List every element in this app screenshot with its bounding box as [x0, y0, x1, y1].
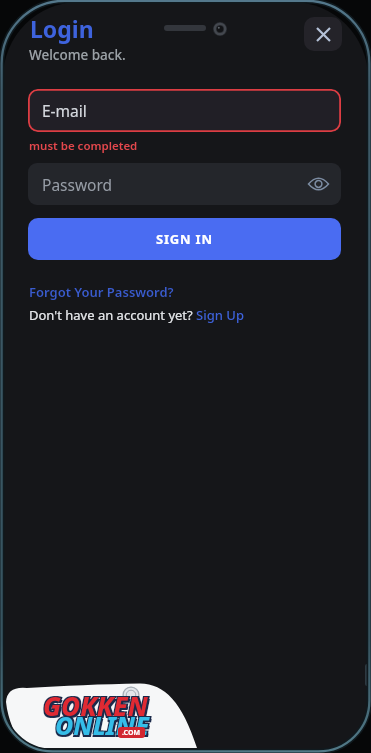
staticText: ONLINE: [54, 707, 148, 741]
button[interactable]: [304, 17, 342, 51]
staticText: SIGN IN: [156, 230, 213, 248]
staticText: E-mail: [42, 100, 87, 121]
staticText: Welcome back.: [29, 46, 126, 64]
staticText: must be completed: [29, 138, 138, 154]
staticText: GOKKEN: [43, 688, 148, 723]
button[interactable]: Forgot Your Password?: [29, 283, 174, 301]
staticText: ONLINE: [57, 707, 151, 741]
button[interactable]: Don't have an account yet? Sign Up: [29, 306, 244, 324]
staticText: GOKKEN: [42, 687, 147, 722]
staticText: ONLINE: [57, 710, 151, 744]
staticText: GOKKEN: [45, 690, 150, 725]
staticText: Forgot Your Password?: [29, 283, 174, 301]
staticText: Login: [30, 13, 94, 44]
button[interactable]: E-mail: [28, 89, 341, 132]
staticText: ONLINE: [55, 708, 149, 742]
staticText: .COM: [122, 728, 141, 738]
button[interactable]: SIGN IN: [28, 218, 341, 260]
staticText: GOKKEN: [42, 690, 147, 725]
button[interactable]: Password: [28, 163, 341, 205]
staticText: ONLINE: [54, 710, 148, 744]
staticText: Don't have an account yet? Sign Up: [29, 306, 244, 324]
staticText: Password: [42, 174, 113, 195]
staticText: GOKKEN: [45, 687, 150, 722]
